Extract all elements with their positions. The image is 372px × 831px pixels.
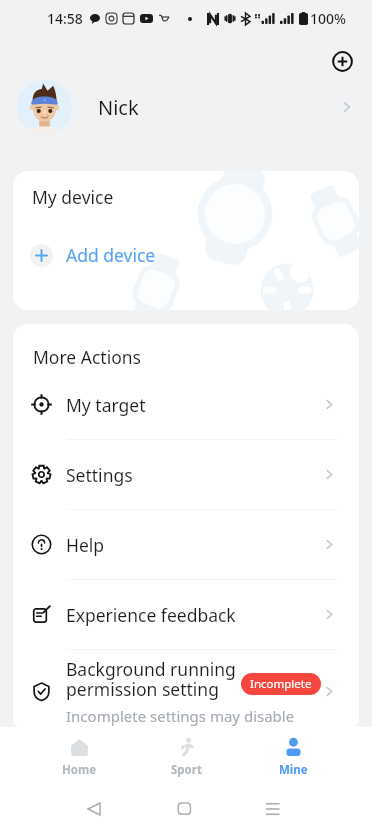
staticText: More Actions — [33, 345, 141, 369]
button[interactable]: Sport — [133, 732, 240, 783]
button[interactable]: Help — [13, 510, 359, 579]
staticText: Help — [66, 533, 105, 557]
button[interactable]: Home — [168, 792, 202, 826]
staticText: Incomplete settings may disable — [66, 706, 295, 726]
button[interactable]: Home — [25, 732, 133, 783]
staticText: My target — [66, 393, 146, 417]
button[interactable]: Settings — [13, 440, 359, 509]
staticText: Nick — [98, 94, 139, 121]
staticText: Experience feedback — [66, 603, 236, 627]
button[interactable]: Background running permission setting — [13, 650, 359, 732]
staticText: Background running permission setting — [66, 657, 236, 702]
staticText: Home — [62, 762, 97, 778]
button[interactable]: Mine — [240, 732, 347, 783]
staticText: My device — [32, 185, 114, 209]
button[interactable]: Experience feedback — [13, 580, 359, 649]
staticText: 14:58 — [47, 9, 83, 28]
staticText: Mine — [279, 762, 308, 778]
button[interactable]: Back — [79, 792, 113, 826]
staticText: Sport — [171, 762, 202, 778]
button[interactable]: Add — [332, 51, 353, 72]
staticText: 100% — [310, 9, 346, 28]
staticText: Incomplete — [250, 676, 312, 692]
button[interactable]: Add device — [28, 240, 158, 270]
staticText: Add device — [66, 243, 156, 267]
button[interactable]: My target — [13, 370, 359, 439]
staticText: Settings — [66, 463, 133, 487]
button[interactable]: Nick — [0, 74, 372, 140]
button[interactable]: Recents — [256, 792, 290, 826]
